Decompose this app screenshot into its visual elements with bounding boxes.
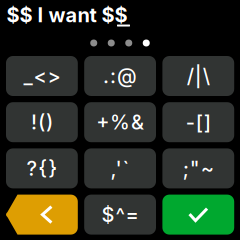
staticText: ?{} [26, 156, 57, 180]
button[interactable]: ;"~ [162, 148, 234, 188]
staticText: .:@ [103, 64, 137, 88]
staticText: _<> [23, 64, 60, 88]
button[interactable]: _<> [6, 56, 78, 96]
button[interactable]: .:@ [84, 56, 156, 96]
button[interactable]: Done [162, 195, 234, 235]
staticText: -[] [186, 110, 211, 134]
button[interactable]: +%& [84, 102, 156, 142]
button[interactable]: Delete [6, 195, 78, 235]
button[interactable]: $^= [84, 195, 156, 235]
button[interactable]: /|\ [162, 56, 234, 96]
staticText: $^= [102, 202, 139, 227]
staticText: /|\ [187, 64, 210, 88]
staticText: +%& [96, 110, 144, 134]
staticText: !() [31, 110, 53, 134]
staticText: ,'` [111, 156, 130, 180]
staticText: ;"~ [183, 156, 214, 180]
button[interactable]: ,'` [84, 148, 156, 188]
button[interactable]: -[] [162, 102, 234, 142]
button[interactable]: !() [6, 102, 78, 142]
button[interactable]: ?{} [6, 148, 78, 188]
staticText: $$ I want $$ [6, 3, 127, 27]
